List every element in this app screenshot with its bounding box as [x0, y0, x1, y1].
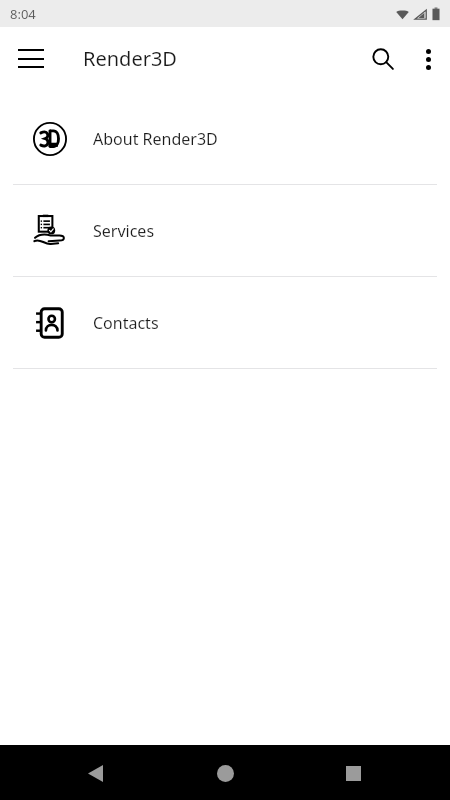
staticText: Contacts: [93, 312, 159, 334]
button[interactable]: Back: [72, 750, 118, 796]
button[interactable]: About Render3D: [0, 93, 450, 184]
button[interactable]: Recent apps: [330, 750, 376, 796]
button[interactable]: Search: [360, 36, 406, 82]
button[interactable]: Home: [202, 750, 248, 796]
button[interactable]: Contacts: [0, 277, 450, 368]
staticText: Render3D: [83, 45, 177, 72]
button[interactable]: More options: [406, 37, 450, 81]
staticText: Services: [93, 220, 155, 242]
staticText: About Render3D: [93, 128, 218, 150]
staticText: 8:04: [10, 5, 36, 23]
button[interactable]: Services: [0, 185, 450, 276]
button[interactable]: Open navigation menu: [10, 38, 52, 80]
